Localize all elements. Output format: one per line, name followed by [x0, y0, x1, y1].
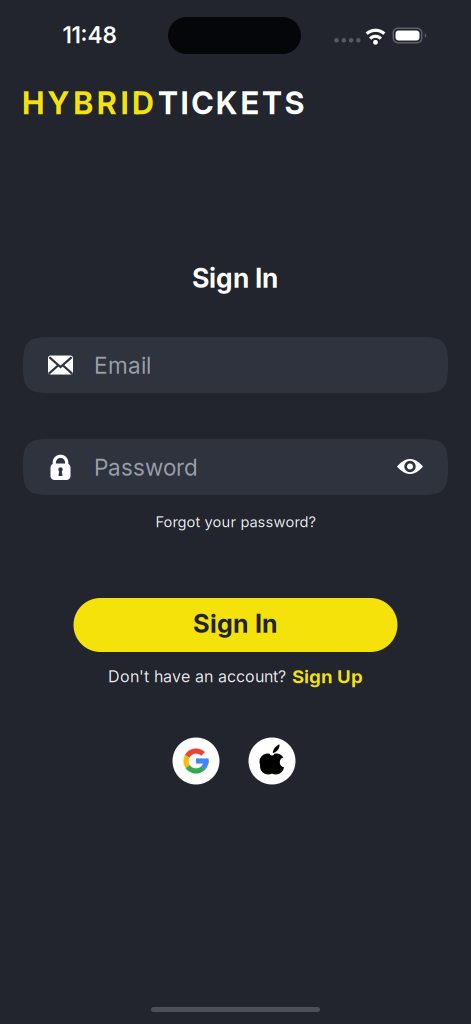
button[interactable]: Forgot your password?: [155, 513, 315, 531]
button[interactable]: Email: [23, 337, 448, 393]
staticText: S: [285, 85, 305, 121]
staticText: C: [191, 85, 213, 121]
staticText: 11:48: [62, 22, 116, 48]
staticText: Forgot your password?: [155, 513, 315, 531]
staticText: T: [158, 85, 178, 121]
staticText: Sign Up: [292, 665, 363, 687]
staticText: E: [240, 85, 259, 121]
staticText: R: [97, 85, 117, 121]
staticText: Password: [94, 454, 198, 481]
staticText: Sign In: [192, 262, 278, 294]
staticText: T: [262, 85, 282, 121]
button[interactable]: Show password: [388, 444, 432, 488]
staticText: I: [120, 85, 128, 121]
staticText: Don't have an account?: [108, 667, 286, 686]
staticText: Y: [48, 85, 70, 121]
staticText: D: [132, 85, 154, 121]
button[interactable]: Sign In: [73, 598, 397, 652]
staticText: B: [73, 85, 93, 121]
button[interactable]: Sign Up: [292, 665, 363, 687]
button[interactable]: Password: [23, 439, 448, 495]
staticText: I: [181, 85, 189, 121]
button[interactable]: Sign in with Google: [172, 737, 219, 784]
staticText: Sign In: [193, 609, 278, 638]
staticText: Email: [94, 352, 151, 379]
button[interactable]: Sign in with Apple: [248, 737, 295, 784]
staticText: K: [216, 85, 238, 121]
staticText: H: [22, 85, 44, 121]
